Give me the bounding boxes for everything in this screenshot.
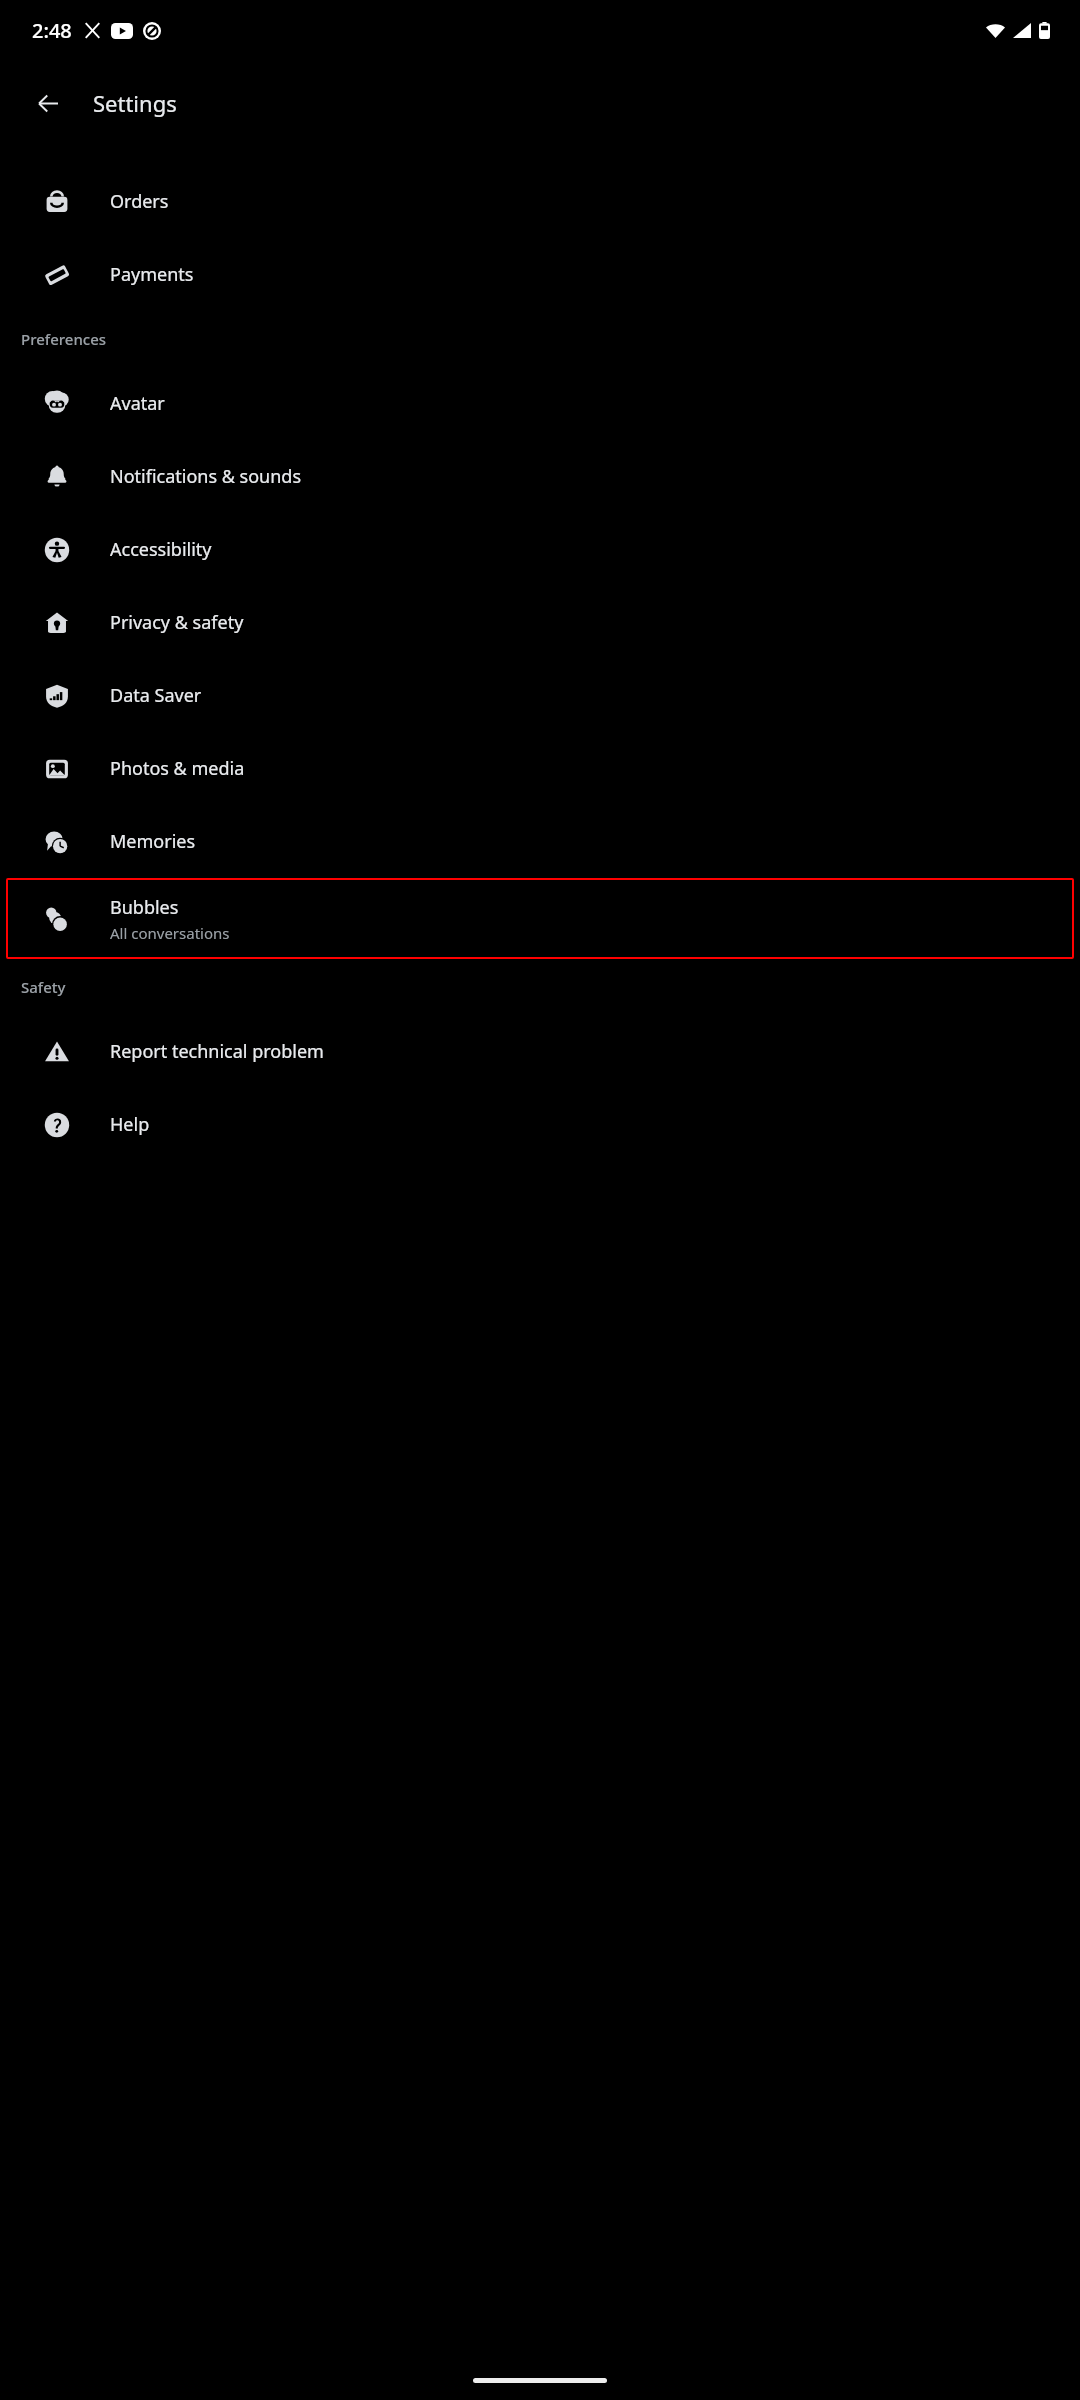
staticText: Accessibility: [110, 537, 212, 562]
staticText: Payments: [110, 262, 194, 287]
staticText: Safety: [21, 977, 66, 997]
button[interactable]: Notifications & sounds: [0, 440, 1080, 513]
staticText: Orders: [110, 189, 169, 214]
staticText: Report technical problem: [110, 1039, 324, 1064]
staticText: Data Saver: [110, 683, 202, 708]
staticText: Photos & media: [110, 756, 245, 781]
button[interactable]: Data Saver: [0, 659, 1080, 732]
button[interactable]: Photos & media: [0, 732, 1080, 805]
button[interactable]: Orders: [0, 165, 1080, 238]
staticText: All conversations: [110, 923, 230, 943]
button[interactable]: Report technical problem: [0, 1015, 1080, 1088]
button[interactable]: Bubbles: [6, 878, 1074, 959]
button[interactable]: Back: [22, 77, 74, 129]
staticText: Privacy & safety: [110, 610, 244, 635]
button[interactable]: Memories: [0, 805, 1080, 878]
button[interactable]: Help: [0, 1088, 1080, 1161]
staticText: Preferences: [21, 329, 107, 349]
staticText: Help: [110, 1112, 150, 1137]
button[interactable]: Privacy & safety: [0, 586, 1080, 659]
button[interactable]: Payments: [0, 238, 1080, 311]
staticText: Avatar: [110, 391, 165, 416]
staticText: Settings: [93, 88, 177, 118]
button[interactable]: Avatar: [0, 367, 1080, 440]
staticText: Notifications & sounds: [110, 464, 302, 489]
staticText: Memories: [110, 829, 196, 854]
button[interactable]: Accessibility: [0, 513, 1080, 586]
staticText: Bubbles: [110, 895, 179, 920]
staticText: 2:48: [32, 17, 72, 44]
